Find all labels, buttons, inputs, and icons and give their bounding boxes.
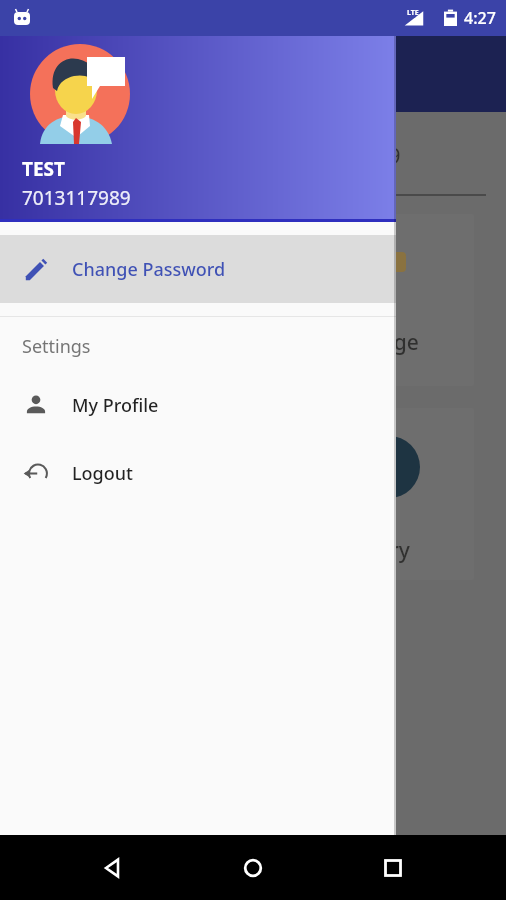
staticText: TEST — [22, 156, 66, 182]
staticText: Change Password — [72, 257, 226, 282]
staticText: harge — [360, 328, 419, 357]
button[interactable]: Change Password — [0, 235, 396, 303]
button[interactable]: TEST — [0, 36, 396, 222]
button[interactable]: Logout — [0, 443, 396, 503]
other: Notification — [12, 8, 32, 28]
button[interactable]: Back — [97, 853, 127, 883]
staticText: Settings — [22, 334, 91, 359]
staticText: 9 — [388, 140, 401, 170]
button[interactable]: Recent apps — [378, 853, 408, 883]
staticText: Logout — [72, 461, 133, 486]
staticText: 4:27 — [464, 7, 496, 29]
staticText: My Profile — [72, 393, 159, 418]
staticText: mary — [358, 536, 410, 565]
button[interactable]: Home — [238, 853, 268, 883]
staticText: 7013117989 — [22, 185, 131, 211]
staticText: LTE — [407, 8, 419, 18]
button[interactable]: My Profile — [0, 375, 396, 435]
